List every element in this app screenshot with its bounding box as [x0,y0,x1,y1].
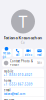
staticText: call [15,53,19,57]
staticText: Tatiana Krasnozhon [3,35,42,40]
staticText: Contact Photo & Poster [10,59,33,67]
staticText: message [2,51,10,59]
button[interactable]: mail [34,48,44,57]
button[interactable]: mobile [2,69,44,78]
staticText: Co [21,41,25,44]
button[interactable]: email [2,87,44,97]
button[interactable]: Contact Photo & Poster [2,59,44,67]
staticText: home [4,79,12,82]
button[interactable]: home [2,78,44,87]
button[interactable]: video [24,48,33,57]
staticText: mobile [4,70,14,73]
staticText: T [18,11,27,32]
staticText: mail [37,53,42,57]
button[interactable]: message [2,48,11,57]
staticText: +1 (555) 010-4321 [4,73,33,77]
staticText: video [24,53,32,57]
staticText: email [4,88,11,92]
button[interactable]: FaceTime [2,97,44,100]
staticText: +1 (555) 867-5309 [4,83,33,86]
staticText: tatiana@mail.com [4,92,25,96]
button[interactable]: call [13,48,22,57]
staticText: FaceTime [4,98,15,100]
staticText: Edit [37,61,42,65]
